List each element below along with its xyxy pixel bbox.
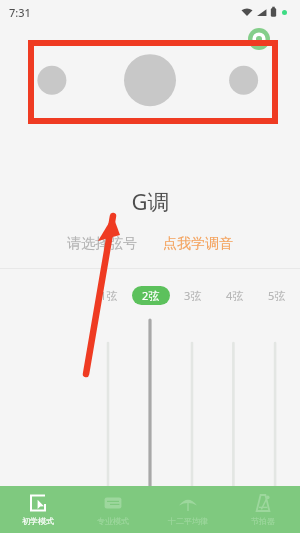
staticText: 4弦 <box>226 288 244 303</box>
staticText: 十二平均律 <box>168 516 208 526</box>
button[interactable]: 3弦 <box>172 288 214 303</box>
button[interactable]: 4弦 <box>214 288 256 303</box>
staticText: 节拍器 <box>251 516 275 526</box>
button[interactable]: Auto tune <box>248 28 270 50</box>
staticText: 初学模式 <box>22 516 54 526</box>
staticText: 3弦 <box>184 288 202 303</box>
button[interactable]: 节拍器 <box>225 486 300 533</box>
button[interactable]: 初学模式 <box>0 486 75 533</box>
button[interactable]: 专业模式 <box>75 486 150 533</box>
button[interactable]: 2弦 <box>130 286 172 305</box>
staticText: 请选择弦号 <box>67 235 137 253</box>
button[interactable]: 请选择弦号 <box>63 232 141 256</box>
button[interactable]: 1弦 <box>88 288 130 303</box>
staticText: 2弦 <box>142 288 160 303</box>
staticText: 7:31 <box>9 5 31 20</box>
button[interactable]: 点我学调音 <box>159 232 237 256</box>
staticText: 5弦 <box>268 288 286 303</box>
staticText: 1弦 <box>100 288 118 303</box>
button[interactable]: 十二平均律 <box>150 486 225 533</box>
staticText: 专业模式 <box>97 516 129 526</box>
button[interactable]: 5弦 <box>256 288 298 303</box>
staticText: 点我学调音 <box>163 235 233 253</box>
staticText: G调 <box>131 186 170 216</box>
